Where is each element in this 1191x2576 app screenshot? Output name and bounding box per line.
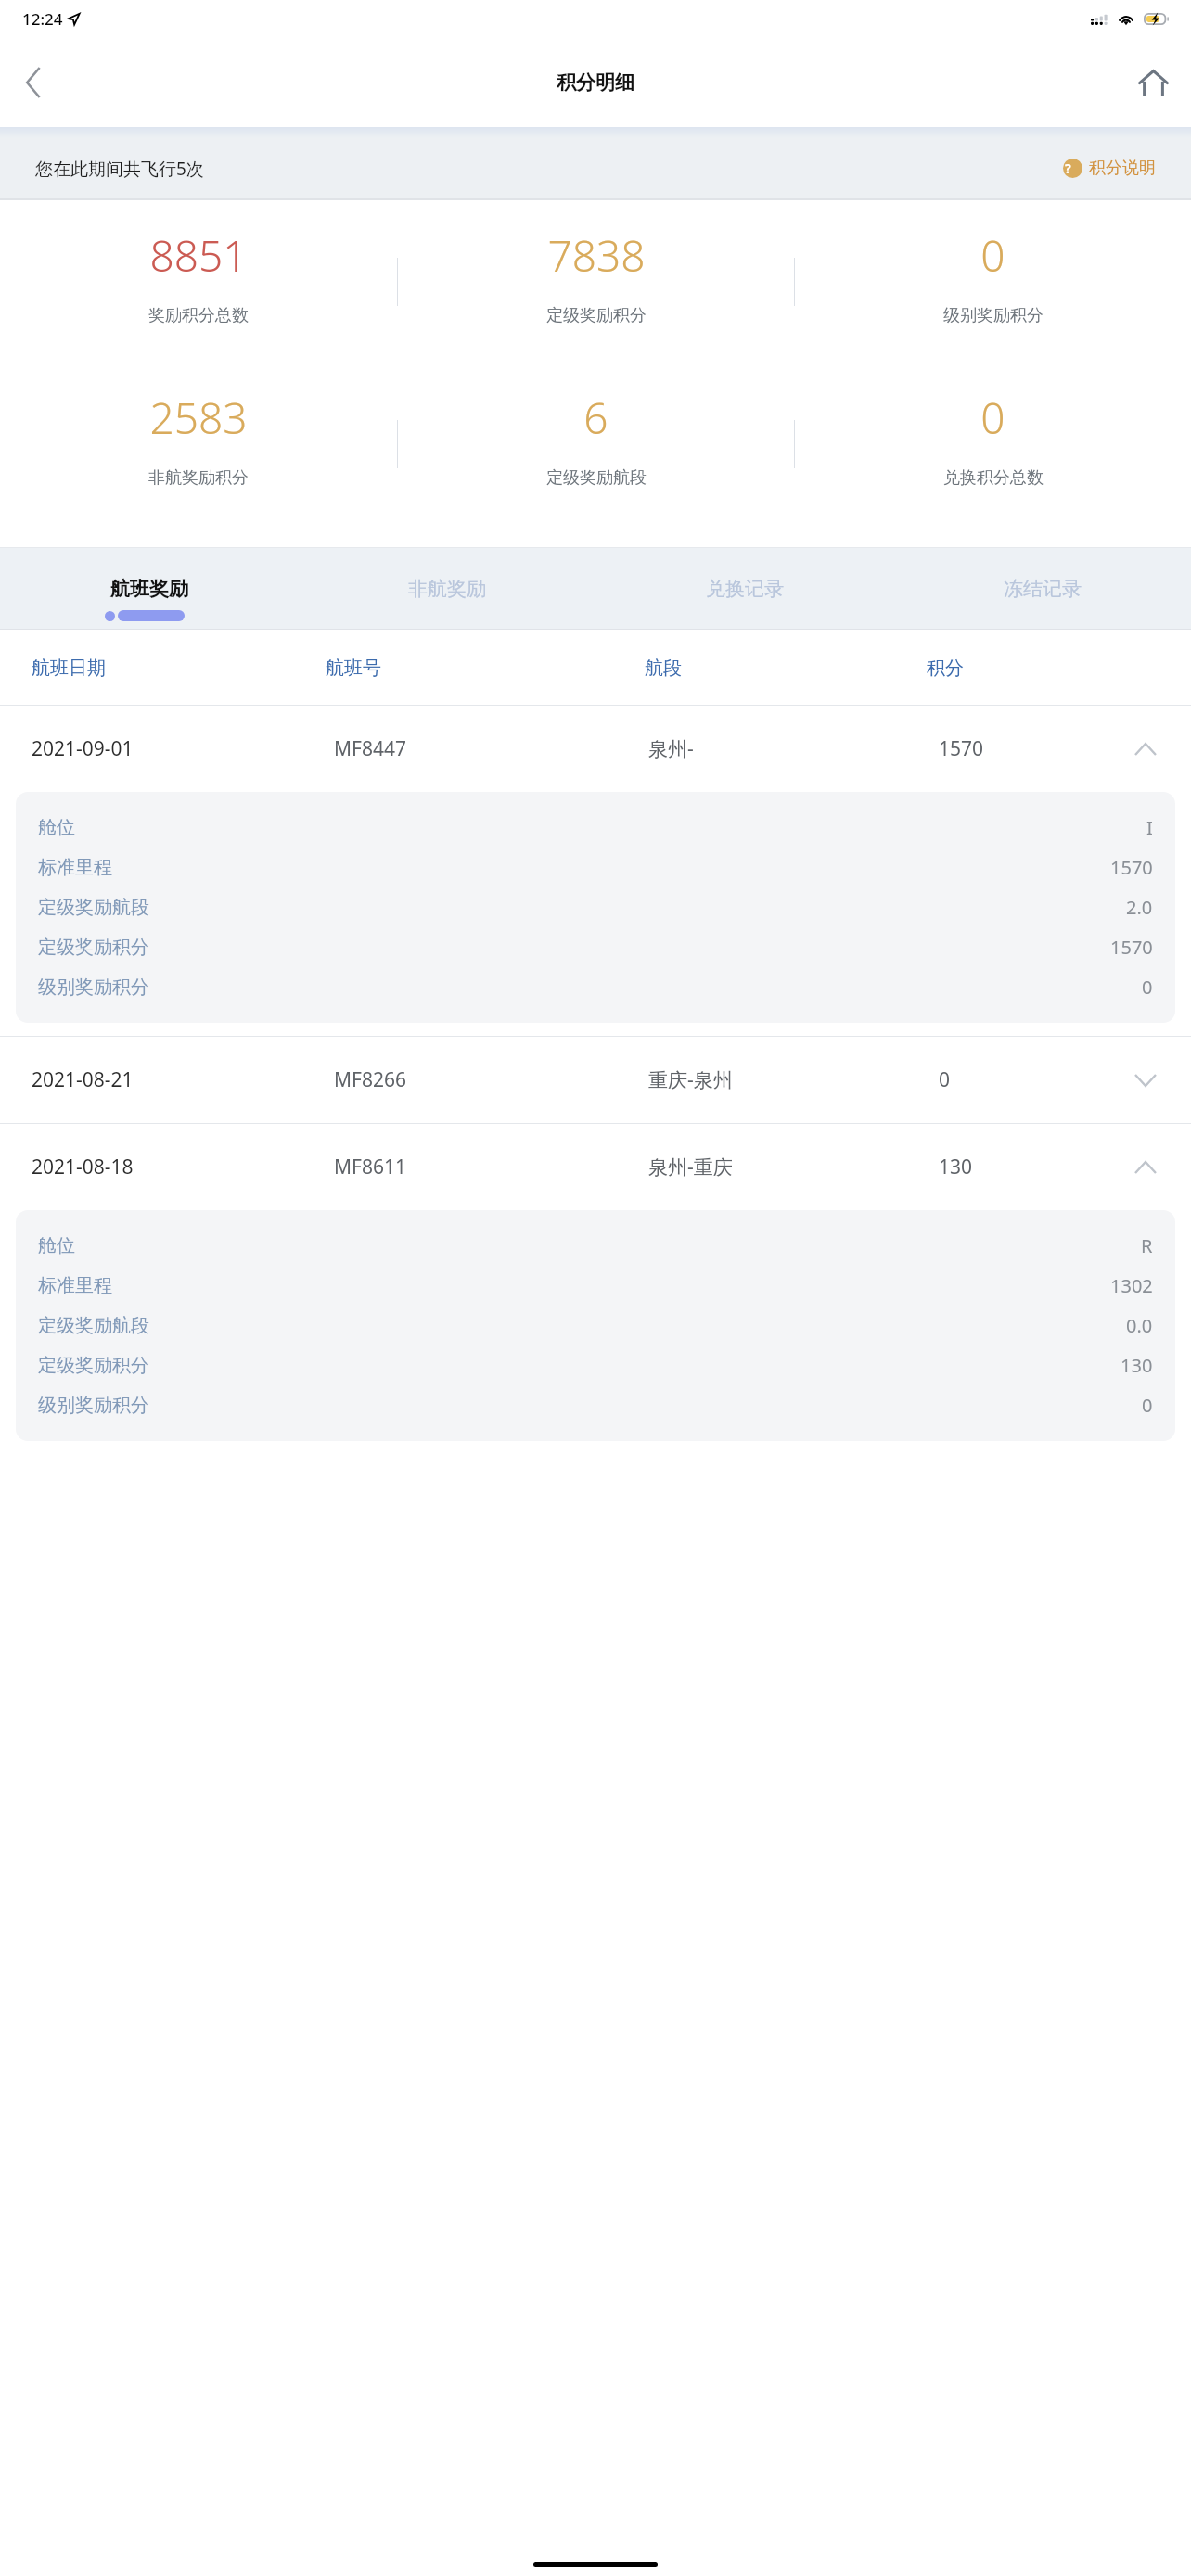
staticText: 定级奖励积分 [546, 305, 647, 326]
staticText: 奖励积分总数 [148, 305, 249, 326]
staticText: 1570 [1110, 935, 1153, 960]
staticText: MF8266 [334, 1066, 648, 1093]
staticText: 8851 [149, 226, 248, 285]
button[interactable]: 积分说明 [1059, 154, 1159, 183]
staticText: 2021-08-21 [32, 1066, 334, 1093]
staticText: 1302 [1110, 1273, 1153, 1298]
staticText: 积分说明 [1089, 158, 1156, 179]
button[interactable]: Back [0, 50, 65, 115]
button[interactable]: Home [1122, 52, 1184, 113]
staticText: 1570 [939, 735, 1124, 762]
staticText: ? [1065, 159, 1071, 177]
staticText: 2583 [149, 389, 248, 447]
staticText: 航班日期 [32, 657, 326, 680]
staticText: R [1141, 1233, 1153, 1258]
staticText: 非航奖励 [408, 577, 486, 601]
staticText: 积分明细 [557, 70, 634, 95]
button[interactable]: 非航奖励 [298, 548, 595, 630]
staticText: 定级奖励积分 [38, 1354, 149, 1377]
button[interactable]: 航班奖励 [0, 548, 298, 630]
staticText: MF8447 [334, 735, 648, 762]
staticText: 12:24 [22, 8, 63, 30]
staticText: 泉州- [648, 735, 939, 762]
staticText: 2.0 [1126, 895, 1153, 920]
staticText: 级别奖励积分 [38, 976, 149, 999]
staticText: 1570 [1110, 855, 1153, 880]
staticText: 级别奖励积分 [38, 1394, 149, 1417]
button[interactable]: 2021-08-18 [0, 1124, 1191, 1210]
button[interactable]: 2021-09-01 [0, 706, 1191, 792]
staticText: 7838 [547, 226, 646, 285]
staticText: 航段 [645, 657, 927, 680]
staticText: 您在此期间共飞行5次 [35, 157, 204, 181]
staticText: 2021-08-18 [32, 1154, 334, 1180]
staticText: 130 [1121, 1353, 1153, 1378]
staticText: 航班号 [326, 657, 645, 680]
staticText: 冻结记录 [1004, 577, 1082, 601]
staticText: 舱位 [38, 1234, 75, 1257]
staticText: 0 [1142, 975, 1153, 1000]
staticText: 定级奖励积分 [38, 936, 149, 959]
staticText: 0 [1142, 1393, 1153, 1418]
staticText: I [1146, 815, 1153, 840]
staticText: 0 [980, 389, 1005, 447]
button[interactable]: 兑换记录 [595, 548, 893, 630]
staticText: 0 [939, 1066, 1124, 1093]
staticText: 舱位 [38, 816, 75, 839]
staticText: 标准里程 [38, 856, 112, 879]
staticText: 6 [583, 389, 608, 447]
staticText: MF8611 [334, 1154, 648, 1180]
staticText: 130 [939, 1154, 1124, 1180]
staticText: 泉州-重庆 [648, 1154, 939, 1180]
staticText: 航班奖励 [110, 577, 188, 601]
button[interactable]: 冻结记录 [893, 548, 1191, 630]
staticText: 0.0 [1126, 1313, 1153, 1338]
staticText: 级别奖励积分 [943, 305, 1044, 326]
staticText: 兑换积分总数 [943, 467, 1044, 489]
staticText: 2021-09-01 [32, 735, 334, 762]
staticText: 兑换记录 [706, 577, 784, 601]
staticText: 非航奖励积分 [148, 467, 249, 489]
staticText: 重庆-泉州 [648, 1066, 939, 1093]
button[interactable]: 2021-08-21 [0, 1037, 1191, 1123]
staticText: 定级奖励航段 [38, 896, 149, 919]
staticText: 积分 [927, 657, 1159, 680]
staticText: 定级奖励航段 [38, 1314, 149, 1337]
staticText: 0 [980, 226, 1005, 285]
staticText: 定级奖励航段 [546, 467, 647, 489]
staticText: 标准里程 [38, 1274, 112, 1297]
